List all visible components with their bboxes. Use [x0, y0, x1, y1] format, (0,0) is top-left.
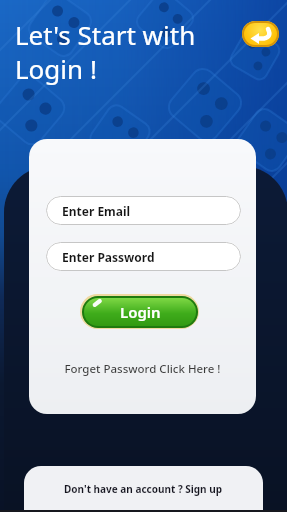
button[interactable]: Forget Password Click Here !: [29, 361, 256, 377]
button[interactable]: Enter Email: [46, 196, 241, 225]
button[interactable]: Enter Password: [46, 242, 241, 271]
button[interactable]: [242, 21, 279, 47]
staticText: Enter Email: [62, 203, 131, 219]
staticText: Let's Start with Login !: [15, 17, 196, 86]
button[interactable]: Don't have an account ? Sign up: [24, 466, 263, 512]
staticText: Don't have an account ? Sign up: [64, 482, 223, 496]
button[interactable]: Login: [80, 294, 199, 329]
staticText: Login: [120, 302, 161, 322]
staticText: Enter Password: [62, 249, 155, 265]
